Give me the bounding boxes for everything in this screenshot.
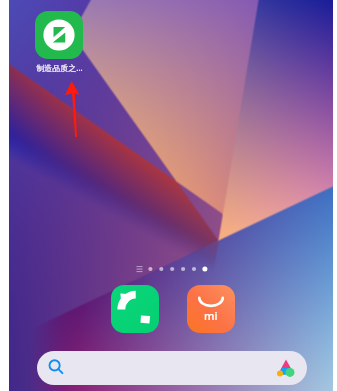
- button[interactable]: 制造品质之...: [29, 11, 89, 73]
- staticText: 制造品质之...: [36, 62, 83, 73]
- button[interactable]: Mi Store: [187, 285, 235, 333]
- staticText: mi: [204, 308, 218, 323]
- button[interactable]: Phone: [111, 285, 159, 333]
- button[interactable]: Search: [37, 351, 307, 385]
